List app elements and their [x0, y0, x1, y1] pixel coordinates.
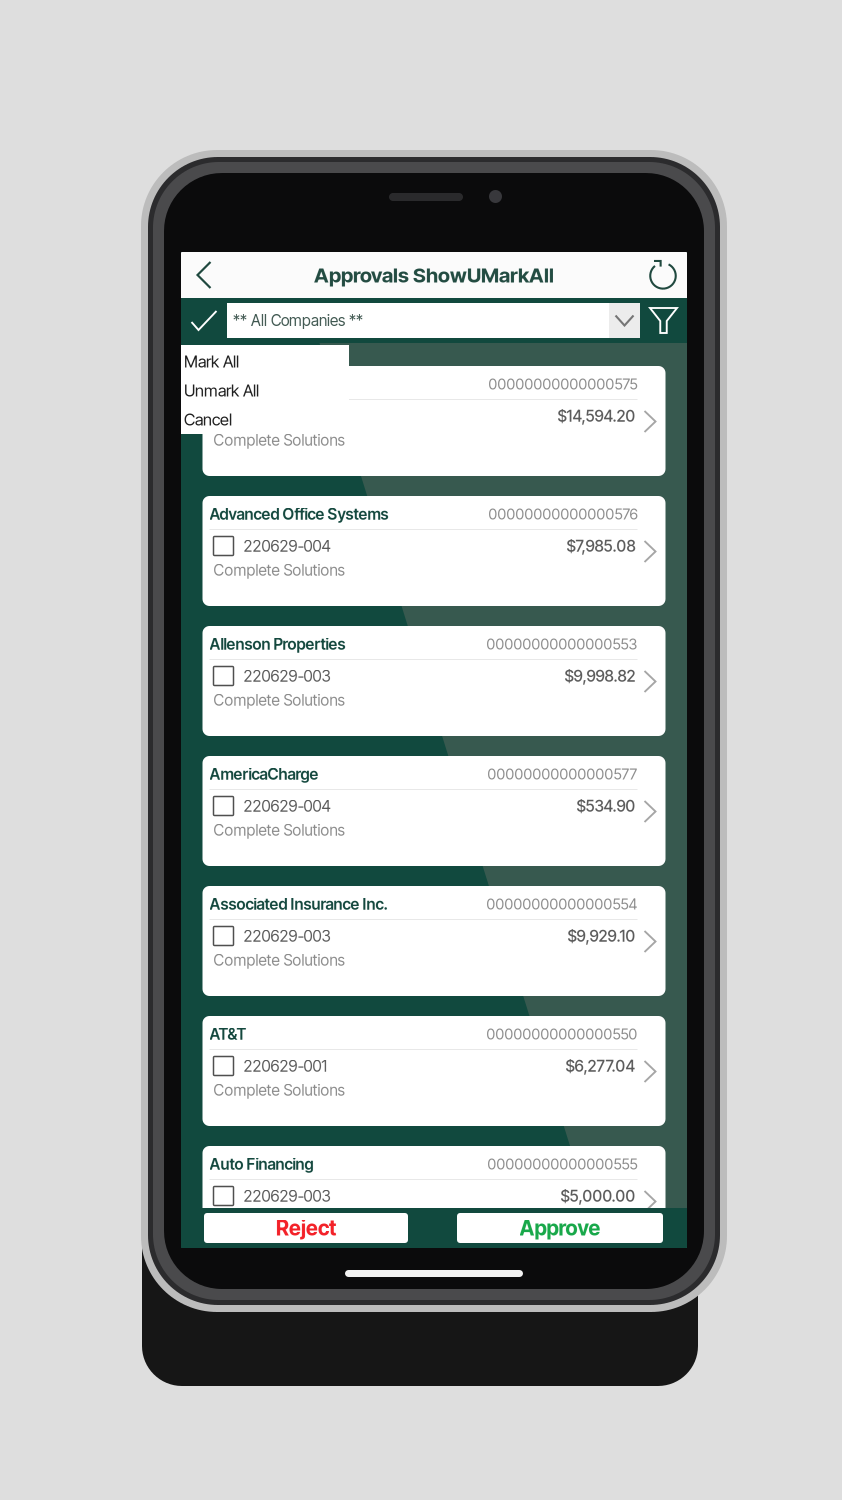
staticText: $14,594.20 [557, 406, 635, 425]
button[interactable]: Advanced Solutions [202, 366, 665, 476]
staticText: Complete Solutions [213, 691, 344, 709]
staticText: 00000000000000576 [488, 505, 637, 523]
staticText: Complete Solutions [213, 821, 344, 839]
button[interactable]: Cancel [181, 405, 349, 434]
button[interactable]: Filter [641, 298, 686, 343]
staticText: 00000000000000550 [486, 1025, 637, 1043]
staticText: 220629-004 [243, 536, 330, 555]
staticText: $534.90 [576, 796, 635, 815]
staticText: 220629-004 [243, 796, 330, 815]
button[interactable]: Approve [457, 1213, 663, 1243]
staticText: Complete Solutions [213, 561, 344, 579]
staticText: Allenson Properties [209, 635, 345, 653]
staticText: Approvals ShowUMarkAll [314, 263, 554, 287]
staticText: Reject [276, 1215, 336, 1240]
button[interactable]: AmericaCharge [202, 756, 665, 866]
staticText: Auto Financing [209, 1155, 313, 1173]
staticText: Approve [519, 1215, 600, 1240]
button[interactable]: Reject [204, 1213, 408, 1243]
staticText: Cancel [184, 410, 232, 429]
button[interactable]: Mark all [181, 298, 227, 343]
button[interactable]: AT&T [202, 1016, 665, 1126]
staticText: 00000000000000555 [487, 1155, 637, 1173]
staticText: Advanced Office Systems [209, 505, 388, 523]
staticText: Complete Solutions [213, 951, 344, 969]
staticText: $6,277.04 [565, 1056, 635, 1075]
staticText: 00000000000000575 [488, 375, 637, 393]
staticText: $7,985.08 [566, 536, 635, 555]
button[interactable]: Back [181, 252, 227, 298]
staticText: $5,000.00 [560, 1186, 635, 1205]
staticText: Complete Solutions [213, 431, 344, 449]
button[interactable]: Mark All [181, 347, 349, 376]
staticText: Mark All [184, 352, 239, 371]
staticText: AT&T [209, 1025, 246, 1043]
staticText: $9,929.10 [567, 926, 635, 945]
button[interactable]: Associated Insurance Inc. [202, 886, 665, 996]
staticText: 00000000000000553 [486, 635, 637, 653]
staticText: ** All Companies ** [233, 311, 363, 330]
staticText: 220629-003 [243, 926, 330, 945]
staticText: Associated Insurance Inc. [209, 895, 387, 913]
button[interactable]: Unmark All [181, 376, 349, 405]
staticText: Advanced Solutions [209, 375, 347, 393]
staticText: Complete Solutions [213, 1211, 344, 1229]
staticText: Complete Solutions [213, 1081, 344, 1099]
staticText: 220629-001 [243, 1056, 327, 1075]
staticText: 220629-003 [243, 1186, 330, 1205]
staticText: 220629-003 [243, 666, 330, 685]
staticText: Unmark All [184, 381, 259, 400]
button[interactable]: Refresh [639, 252, 687, 298]
button[interactable]: ** All Companies ** [227, 303, 640, 338]
button[interactable]: Allenson Properties [202, 626, 665, 736]
staticText: 00000000000000577 [487, 765, 637, 783]
staticText: AmericaCharge [209, 765, 318, 783]
button[interactable]: Auto Financing [202, 1146, 665, 1256]
staticText: 00000000000000554 [486, 895, 637, 913]
button[interactable]: Advanced Office Systems [202, 496, 665, 606]
staticText: $9,998.82 [564, 666, 635, 685]
